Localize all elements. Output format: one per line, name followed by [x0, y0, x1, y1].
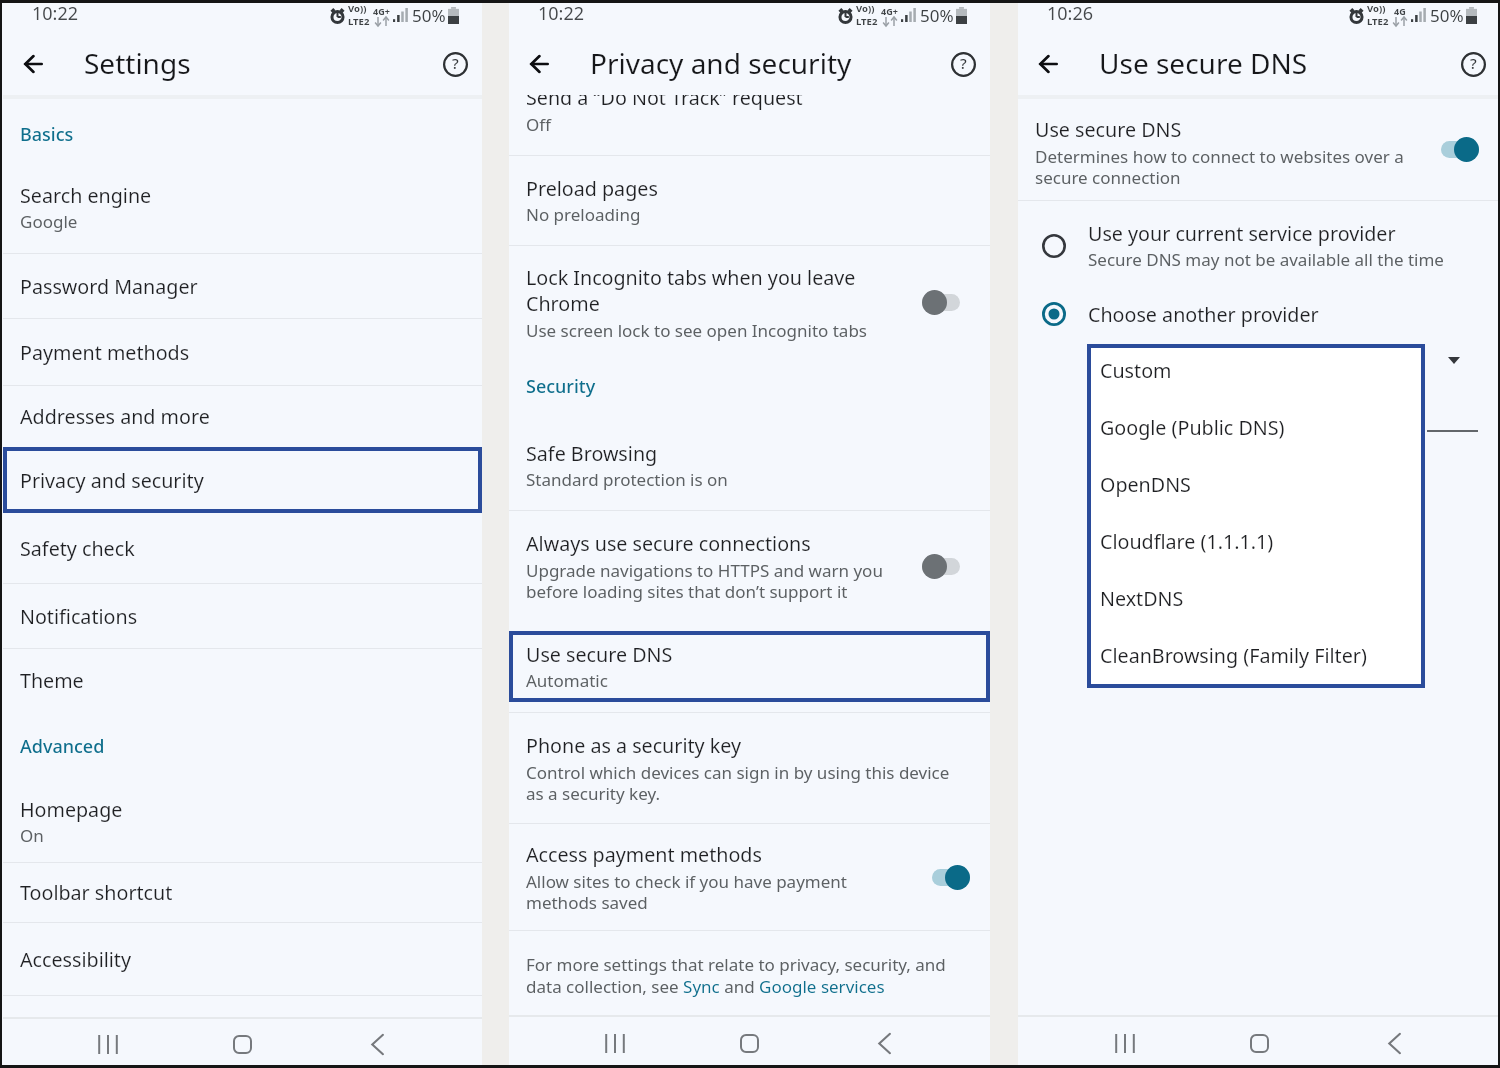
staticText: Cloudflare (1.1.1.1)	[1100, 528, 1274, 555]
staticText: For more settings that relate to privacy…	[526, 953, 946, 998]
button[interactable]: Custom	[1100, 357, 1421, 414]
staticText: Phone as a security key	[526, 732, 742, 759]
button[interactable]: Cloudflare (1.1.1.1)	[1100, 528, 1421, 585]
button[interactable]: Help and feedback	[942, 43, 984, 85]
staticText: Determines how to connect to websites ov…	[1035, 145, 1404, 189]
button[interactable]: CleanBrowsing (Family Filter)	[1100, 642, 1421, 684]
button[interactable]: Use secure DNS	[509, 631, 990, 702]
button[interactable]: Help and feedback	[434, 43, 476, 85]
button[interactable]: Lock Incognito tabs when you leave Chrom…	[509, 246, 990, 359]
button[interactable]: Homepage	[3, 787, 482, 862]
button[interactable]: Home	[175, 1022, 310, 1066]
staticText: Safety check	[20, 535, 135, 562]
staticText: Secure DNS may not be available all the …	[1088, 248, 1444, 271]
staticText: Use your current service provider	[1088, 220, 1396, 247]
staticText: Preload pages	[526, 175, 658, 202]
button[interactable]: Home	[682, 1021, 817, 1065]
button[interactable]: Privacy and security	[3, 447, 482, 513]
staticText: 10:22	[32, 1, 79, 26]
button[interactable]: Help and feedback	[1452, 43, 1494, 85]
button[interactable]: Recent apps	[1057, 1021, 1192, 1065]
staticText: Use secure DNS	[1035, 116, 1182, 143]
button[interactable]: Recent apps	[40, 1022, 175, 1066]
staticText: Privacy and security	[20, 467, 204, 494]
staticText: LTE2	[1367, 15, 1389, 28]
staticText: Payment methods	[20, 339, 190, 366]
staticText: Control which devices can sign in by usi…	[526, 761, 950, 805]
staticText: ?	[960, 53, 967, 73]
button[interactable]: Notifications	[3, 584, 482, 648]
staticText: ?	[452, 53, 459, 73]
button[interactable]: Safety check	[3, 513, 482, 583]
button[interactable]: Search engine	[3, 167, 482, 253]
button[interactable]: OpenDNS	[1100, 471, 1421, 528]
button[interactable]: Send a “Do Not Track” request	[509, 95, 990, 155]
staticText: Privacy and security	[590, 44, 852, 82]
staticText: Toolbar shortcut	[20, 879, 173, 906]
staticText: Basics	[20, 122, 74, 147]
staticText: 50%	[920, 4, 954, 27]
button[interactable]: Always use secure connections	[509, 511, 990, 622]
button[interactable]: Back	[1327, 1021, 1462, 1065]
button[interactable]: Payment methods	[3, 319, 482, 385]
staticText: Accessibility	[20, 946, 132, 973]
staticText: Lock Incognito tabs when you leave Chrom…	[526, 264, 856, 317]
button[interactable]: Back	[310, 1022, 445, 1066]
staticText: Addresses and more	[20, 403, 210, 430]
staticText: Use secure DNS	[526, 641, 673, 668]
button[interactable]: Use your current service provider	[1018, 201, 1500, 291]
staticText: Always use secure connections	[526, 530, 811, 557]
staticText: 4G+	[881, 5, 898, 17]
button[interactable]: Access payment methods	[509, 824, 990, 930]
staticText: Choose another provider	[1088, 301, 1319, 328]
staticText: Standard protection is on	[526, 468, 728, 491]
staticText: Automatic	[526, 669, 608, 692]
button[interactable]: Addresses and more	[3, 386, 482, 447]
button[interactable]: Phone as a security key	[509, 713, 990, 823]
button[interactable]: Preload pages	[509, 156, 990, 245]
button[interactable]: NextDNS	[1100, 585, 1421, 642]
staticText: Security	[526, 374, 596, 399]
staticText: Theme	[20, 667, 84, 694]
staticText: 10:22	[538, 1, 585, 26]
staticText: Password Manager	[20, 273, 198, 300]
button[interactable]: Theme	[3, 649, 482, 711]
staticText: Search engine	[20, 182, 152, 209]
staticText: Send a “Do Not Track” request	[526, 95, 803, 111]
staticText: NextDNS	[1100, 585, 1184, 612]
staticText: Use screen lock to see open Incognito ta…	[526, 319, 868, 342]
staticText: Vo))	[348, 2, 367, 15]
staticText: Use secure DNS	[1099, 44, 1308, 82]
staticText: No preloading	[526, 203, 641, 226]
staticText: OpenDNS	[1100, 471, 1191, 498]
button[interactable]: Accessibility	[3, 923, 482, 995]
button[interactable]: Recent apps	[547, 1021, 682, 1065]
staticText: Off	[526, 113, 551, 136]
staticText: Homepage	[20, 796, 123, 823]
staticText: ?	[1470, 53, 1477, 73]
staticText: Custom	[1100, 357, 1172, 384]
button[interactable]: Back	[817, 1021, 952, 1065]
button[interactable]: Use secure DNS	[1018, 99, 1500, 200]
button[interactable]: Navigate up	[1027, 43, 1069, 85]
button[interactable]: Navigate up	[12, 43, 54, 85]
staticText: On	[20, 824, 44, 847]
button[interactable]: Password Manager	[3, 254, 482, 318]
staticText: Upgrade navigations to HTTPS and warn yo…	[526, 559, 883, 603]
staticText: CleanBrowsing (Family Filter)	[1100, 642, 1367, 669]
staticText: 50%	[412, 4, 446, 27]
button[interactable]: Toolbar shortcut	[3, 863, 482, 922]
staticText: Advanced	[20, 734, 105, 759]
staticText: LTE2	[348, 15, 370, 28]
staticText: 4G	[1394, 5, 1406, 17]
button[interactable]: Home	[1192, 1021, 1327, 1065]
staticText: Vo))	[1367, 2, 1386, 15]
button[interactable]: Google (Public DNS)	[1100, 414, 1421, 471]
staticText: Settings	[84, 44, 191, 82]
staticText: Safe Browsing	[526, 440, 658, 467]
staticText: Notifications	[20, 603, 138, 630]
button[interactable]: Choose another provider	[1018, 291, 1500, 337]
button[interactable]: Navigate up	[518, 43, 560, 85]
staticText: LTE2	[856, 15, 878, 28]
button[interactable]: Safe Browsing	[509, 421, 990, 510]
